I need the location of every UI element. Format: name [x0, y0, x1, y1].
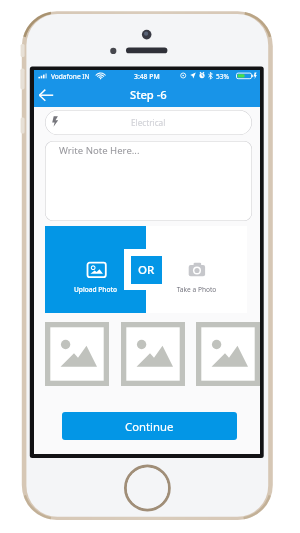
button[interactable]: [121, 322, 185, 386]
button[interactable]: Upload Photo: [45, 226, 146, 313]
button[interactable]: Take a Photo: [146, 226, 247, 313]
staticText: Vodafone IN: [51, 72, 90, 81]
button[interactable]: Electrical: [45, 110, 252, 135]
staticText: Take a Photo: [146, 285, 247, 295]
button[interactable]: Back: [35, 84, 59, 106]
staticText: Write Note Here...: [59, 144, 140, 157]
staticText: Continue: [125, 419, 174, 434]
button[interactable]: [196, 322, 260, 386]
button[interactable]: Continue: [62, 412, 237, 440]
button[interactable]: Write Note Here...: [45, 141, 252, 221]
staticText: 53%: [216, 72, 230, 81]
staticText: OR: [138, 262, 155, 278]
staticText: 3:48 PM: [134, 72, 160, 81]
staticText: Step -6: [130, 87, 167, 102]
staticText: Upload Photo: [45, 285, 146, 295]
staticText: Electrical: [131, 117, 166, 128]
button[interactable]: [45, 322, 109, 386]
